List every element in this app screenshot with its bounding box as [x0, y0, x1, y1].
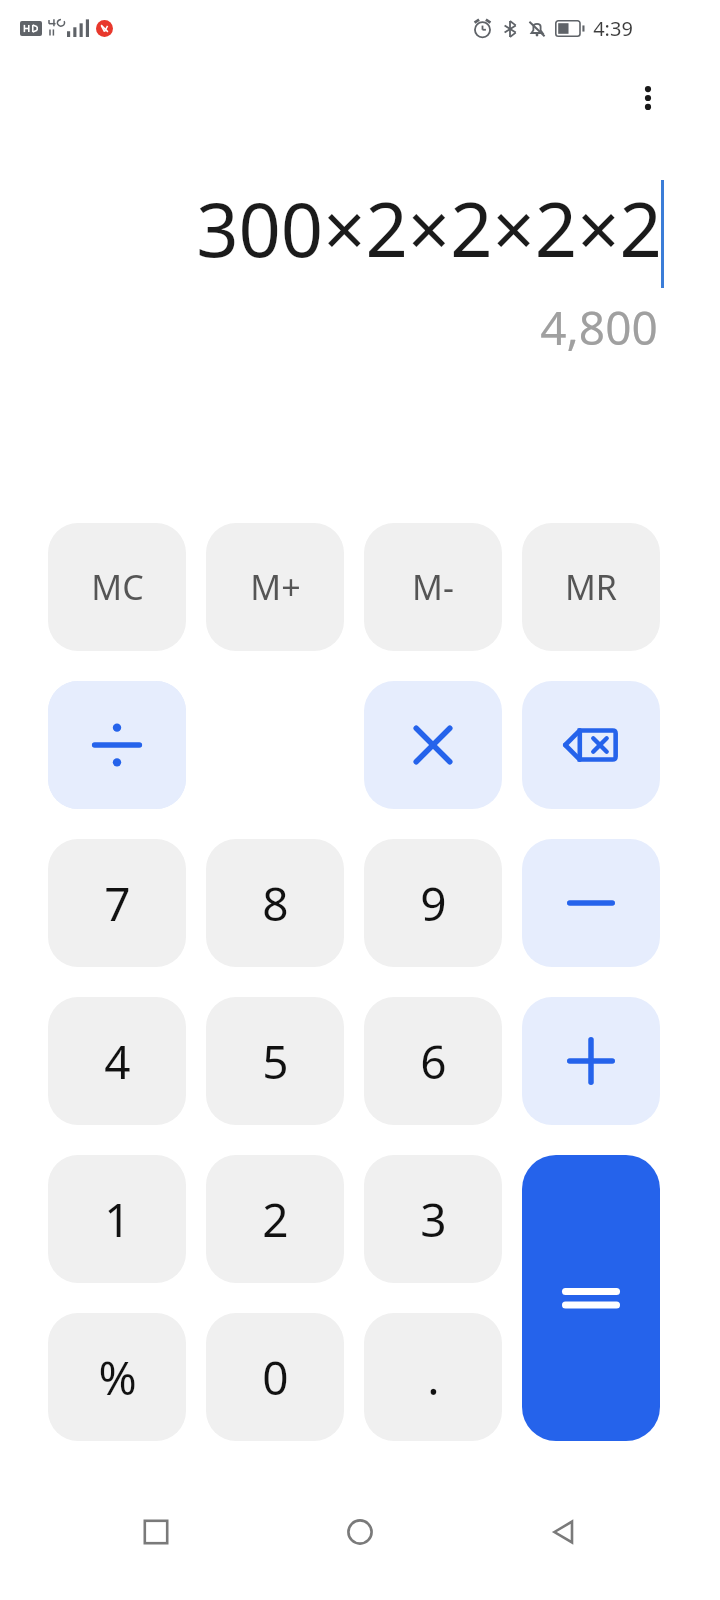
button[interactable]: Multiply	[364, 681, 502, 809]
staticText: C	[102, 714, 132, 777]
button[interactable]: 8	[206, 839, 344, 967]
button[interactable]: .	[364, 1313, 502, 1441]
staticText: 4,800	[540, 296, 658, 359]
button[interactable]: 6	[364, 997, 502, 1125]
staticText: 9	[420, 872, 447, 935]
staticText: 0	[262, 1346, 289, 1409]
button[interactable]: 2	[206, 1155, 344, 1283]
button[interactable]: MR	[522, 523, 660, 651]
button[interactable]: 0	[206, 1313, 344, 1441]
button[interactable]: Plus	[522, 997, 660, 1125]
staticText: 5	[262, 1030, 289, 1093]
staticText: M-	[412, 564, 454, 610]
staticText: M+	[250, 564, 301, 610]
staticText: .	[427, 1346, 440, 1409]
button[interactable]: %	[48, 1313, 186, 1441]
button[interactable]: 9	[364, 839, 502, 967]
staticText: MR	[565, 564, 617, 610]
button[interactable]: Minus	[522, 839, 660, 967]
button[interactable]: MC	[48, 523, 186, 651]
button[interactable]: C	[48, 681, 186, 809]
staticText: %	[98, 1346, 137, 1409]
button[interactable]: Back	[516, 1496, 612, 1568]
button[interactable]: 1	[48, 1155, 186, 1283]
staticText: 7	[104, 872, 131, 935]
button[interactable]: More options	[612, 62, 684, 134]
staticText: 1	[104, 1188, 131, 1251]
staticText: MC	[91, 564, 144, 610]
button[interactable]: Home	[312, 1496, 408, 1568]
button[interactable]: 7	[48, 839, 186, 967]
staticText: 300×2×2×2×2	[196, 178, 662, 279]
button[interactable]: 3	[364, 1155, 502, 1283]
button[interactable]: 5	[206, 997, 344, 1125]
button[interactable]: Divide	[48, 681, 186, 809]
staticText: 3	[420, 1188, 447, 1251]
button[interactable]: 4	[48, 997, 186, 1125]
button[interactable]: Recents	[108, 1496, 204, 1568]
button[interactable]: M+	[206, 523, 344, 651]
staticText: 8	[262, 872, 289, 935]
button[interactable]: Equals	[522, 1155, 660, 1441]
button[interactable]: M-	[364, 523, 502, 651]
staticText: 4:39	[593, 15, 633, 42]
staticText: 2	[262, 1188, 289, 1251]
staticText: 6	[420, 1030, 447, 1093]
staticText: 4	[104, 1030, 131, 1093]
button[interactable]: Backspace	[522, 681, 660, 809]
